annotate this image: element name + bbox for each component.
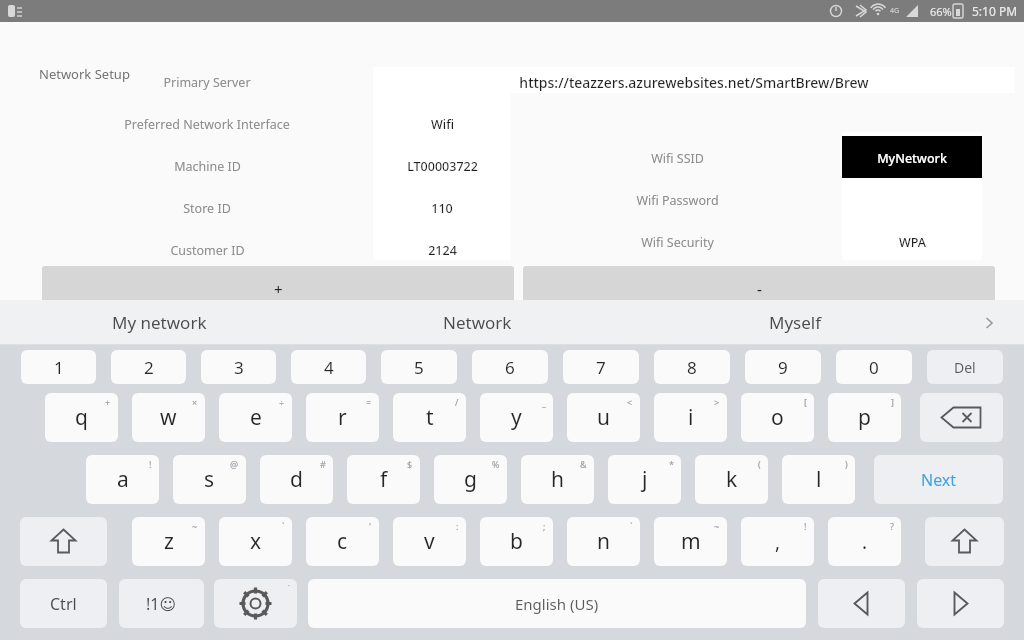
button[interactable]: + xyxy=(45,393,118,442)
staticText: 5 xyxy=(414,356,424,379)
button[interactable]: Machine ID xyxy=(96,156,318,176)
button[interactable]: ` xyxy=(567,517,640,566)
button[interactable]: 0 xyxy=(836,350,912,384)
button[interactable]: ! xyxy=(86,455,159,504)
button[interactable]: - xyxy=(523,266,995,312)
staticText: × xyxy=(192,396,198,408)
button[interactable]: Settings xyxy=(214,579,297,628)
button[interactable]: ~ xyxy=(654,517,727,566)
button[interactable]: & xyxy=(521,455,594,504)
button[interactable]: ! xyxy=(741,517,814,566)
button[interactable]: = xyxy=(306,393,379,442)
button[interactable]: < xyxy=(567,393,640,442)
button[interactable]: : xyxy=(393,517,466,566)
button[interactable]: ' xyxy=(306,517,379,566)
staticText: Primary Server xyxy=(163,74,251,91)
button[interactable]: @ xyxy=(173,455,246,504)
button[interactable]: _ xyxy=(480,393,553,442)
button[interactable]: 9 xyxy=(745,350,821,384)
button[interactable]: Wifi SSID xyxy=(570,148,784,168)
button[interactable]: ; xyxy=(480,517,553,566)
staticText: $ xyxy=(407,458,413,470)
button[interactable]: > xyxy=(654,393,727,442)
staticText: 3 xyxy=(234,356,244,379)
button[interactable]: Store ID xyxy=(96,198,318,218)
button[interactable]: ` xyxy=(219,517,292,566)
button[interactable]: $ xyxy=(347,455,420,504)
staticText: p xyxy=(858,403,871,432)
button[interactable]: WPA xyxy=(842,232,982,252)
button[interactable]: 7 xyxy=(563,350,639,384)
button[interactable]: Shift xyxy=(20,517,107,566)
button[interactable]: / xyxy=(393,393,466,442)
button[interactable]: 1 xyxy=(21,350,96,384)
staticText: [ xyxy=(804,396,807,408)
staticText: Preferred Network Interface xyxy=(124,116,290,133)
staticText: Wifi Security xyxy=(641,234,714,251)
staticText: Del xyxy=(954,358,976,377)
button[interactable]: My network xyxy=(0,300,318,345)
staticText: Wifi Password xyxy=(636,192,719,209)
button[interactable]: Ctrl xyxy=(20,579,107,628)
staticText: c xyxy=(337,527,348,556)
button[interactable]: LT00003722 xyxy=(373,156,511,176)
staticText: x xyxy=(250,527,262,556)
button[interactable]: ÷ xyxy=(219,393,292,442)
button[interactable]: Backspace xyxy=(920,393,1003,442)
button[interactable]: 2 xyxy=(111,350,186,384)
button[interactable]: 6 xyxy=(472,350,548,384)
staticText: ; xyxy=(543,520,546,532)
staticText: ! xyxy=(149,458,152,470)
button[interactable]: !1☺ xyxy=(119,579,204,628)
button[interactable]: Preferred Network Interface xyxy=(96,114,318,134)
button[interactable]: More suggestions xyxy=(954,300,1024,345)
staticText: ] xyxy=(891,396,894,408)
staticText: Wifi xyxy=(431,116,454,133)
button[interactable]: [ xyxy=(741,393,814,442)
button[interactable] xyxy=(842,136,982,178)
button[interactable]: Del xyxy=(927,350,1003,384)
staticText: l xyxy=(816,465,822,494)
staticText: 0 xyxy=(869,356,879,379)
button[interactable]: Wifi Security xyxy=(570,232,784,252)
button[interactable]: 4 xyxy=(291,350,366,384)
staticText: d xyxy=(290,465,303,494)
button[interactable]: 2124 xyxy=(373,240,511,260)
button[interactable]: 3 xyxy=(201,350,276,384)
button[interactable]: ] xyxy=(828,393,901,442)
button[interactable]: Network xyxy=(318,300,636,345)
button[interactable]: Wifi Password xyxy=(570,190,784,210)
button[interactable]: Move cursor left xyxy=(818,579,905,628)
staticText: 2 xyxy=(144,356,154,379)
button[interactable]: Next xyxy=(874,455,1003,504)
button[interactable]: Shift xyxy=(925,517,1004,566)
button[interactable] xyxy=(373,67,1015,93)
button[interactable]: English (US) xyxy=(308,579,806,628)
staticText: English (US) xyxy=(515,594,599,614)
button[interactable]: Move cursor right xyxy=(917,579,1004,628)
button[interactable]: 110 xyxy=(373,198,511,218)
staticText: ~ xyxy=(192,520,198,532)
button[interactable]: 8 xyxy=(654,350,730,384)
button[interactable]: Customer ID xyxy=(96,240,318,260)
button[interactable]: + xyxy=(42,266,514,312)
button[interactable]: 5 xyxy=(381,350,457,384)
button[interactable]: % xyxy=(434,455,507,504)
button[interactable]: × xyxy=(132,393,205,442)
staticText: > xyxy=(714,396,720,408)
staticText: ? xyxy=(890,520,894,532)
staticText: Customer ID xyxy=(170,242,245,259)
button[interactable]: ) xyxy=(782,455,855,504)
staticText: = xyxy=(366,396,372,408)
button[interactable]: ~ xyxy=(132,517,205,566)
button[interactable]: Primary Server xyxy=(96,72,318,92)
button[interactable]: ( xyxy=(695,455,768,504)
button[interactable]: ? xyxy=(828,517,901,566)
button[interactable]: Myself xyxy=(636,300,954,345)
staticText: https://teazzers.azurewebsites.net/Smart… xyxy=(519,73,869,92)
button[interactable]: # xyxy=(260,455,333,504)
staticText: + xyxy=(105,396,111,408)
button[interactable]: Wifi xyxy=(373,114,511,134)
button[interactable]: * xyxy=(608,455,681,504)
staticText: k xyxy=(726,465,738,494)
